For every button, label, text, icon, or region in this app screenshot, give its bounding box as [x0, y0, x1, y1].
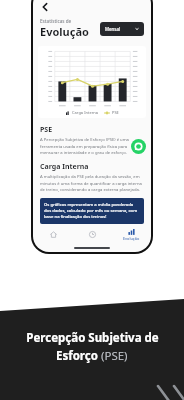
- staticText: Mensal: [105, 26, 135, 32]
- button[interactable]: Evolução: [112, 224, 151, 244]
- staticText: A Percepção Subjetiva de Esforço (PSE) é…: [40, 137, 144, 155]
- staticText: A multiplicação da PSE pela duração da s…: [40, 174, 144, 192]
- staticText: Carga Interna: [40, 162, 89, 172]
- staticText: Percepção Subjetiva de: [26, 330, 159, 346]
- button[interactable]: History: [73, 224, 112, 244]
- button[interactable]: Back: [38, 0, 52, 14]
- staticText: Carga Interna: [72, 110, 99, 115]
- staticText: PSE: [112, 110, 119, 115]
- button[interactable]: Mensal: [100, 22, 144, 36]
- button[interactable]: Home: [33, 224, 73, 244]
- staticText: Esforço: [56, 348, 101, 364]
- button[interactable]: Next: [144, 364, 178, 390]
- staticText: PSE: [40, 125, 53, 135]
- staticText: Estatísticas de: [40, 18, 72, 24]
- button[interactable]: WhatsApp: [131, 139, 146, 154]
- staticText: Evolução: [123, 236, 140, 241]
- staticText: (PSE): [101, 348, 128, 364]
- staticText: Os gráficos representam a média ponderad…: [44, 202, 140, 220]
- staticText: Evolução: [40, 24, 89, 39]
